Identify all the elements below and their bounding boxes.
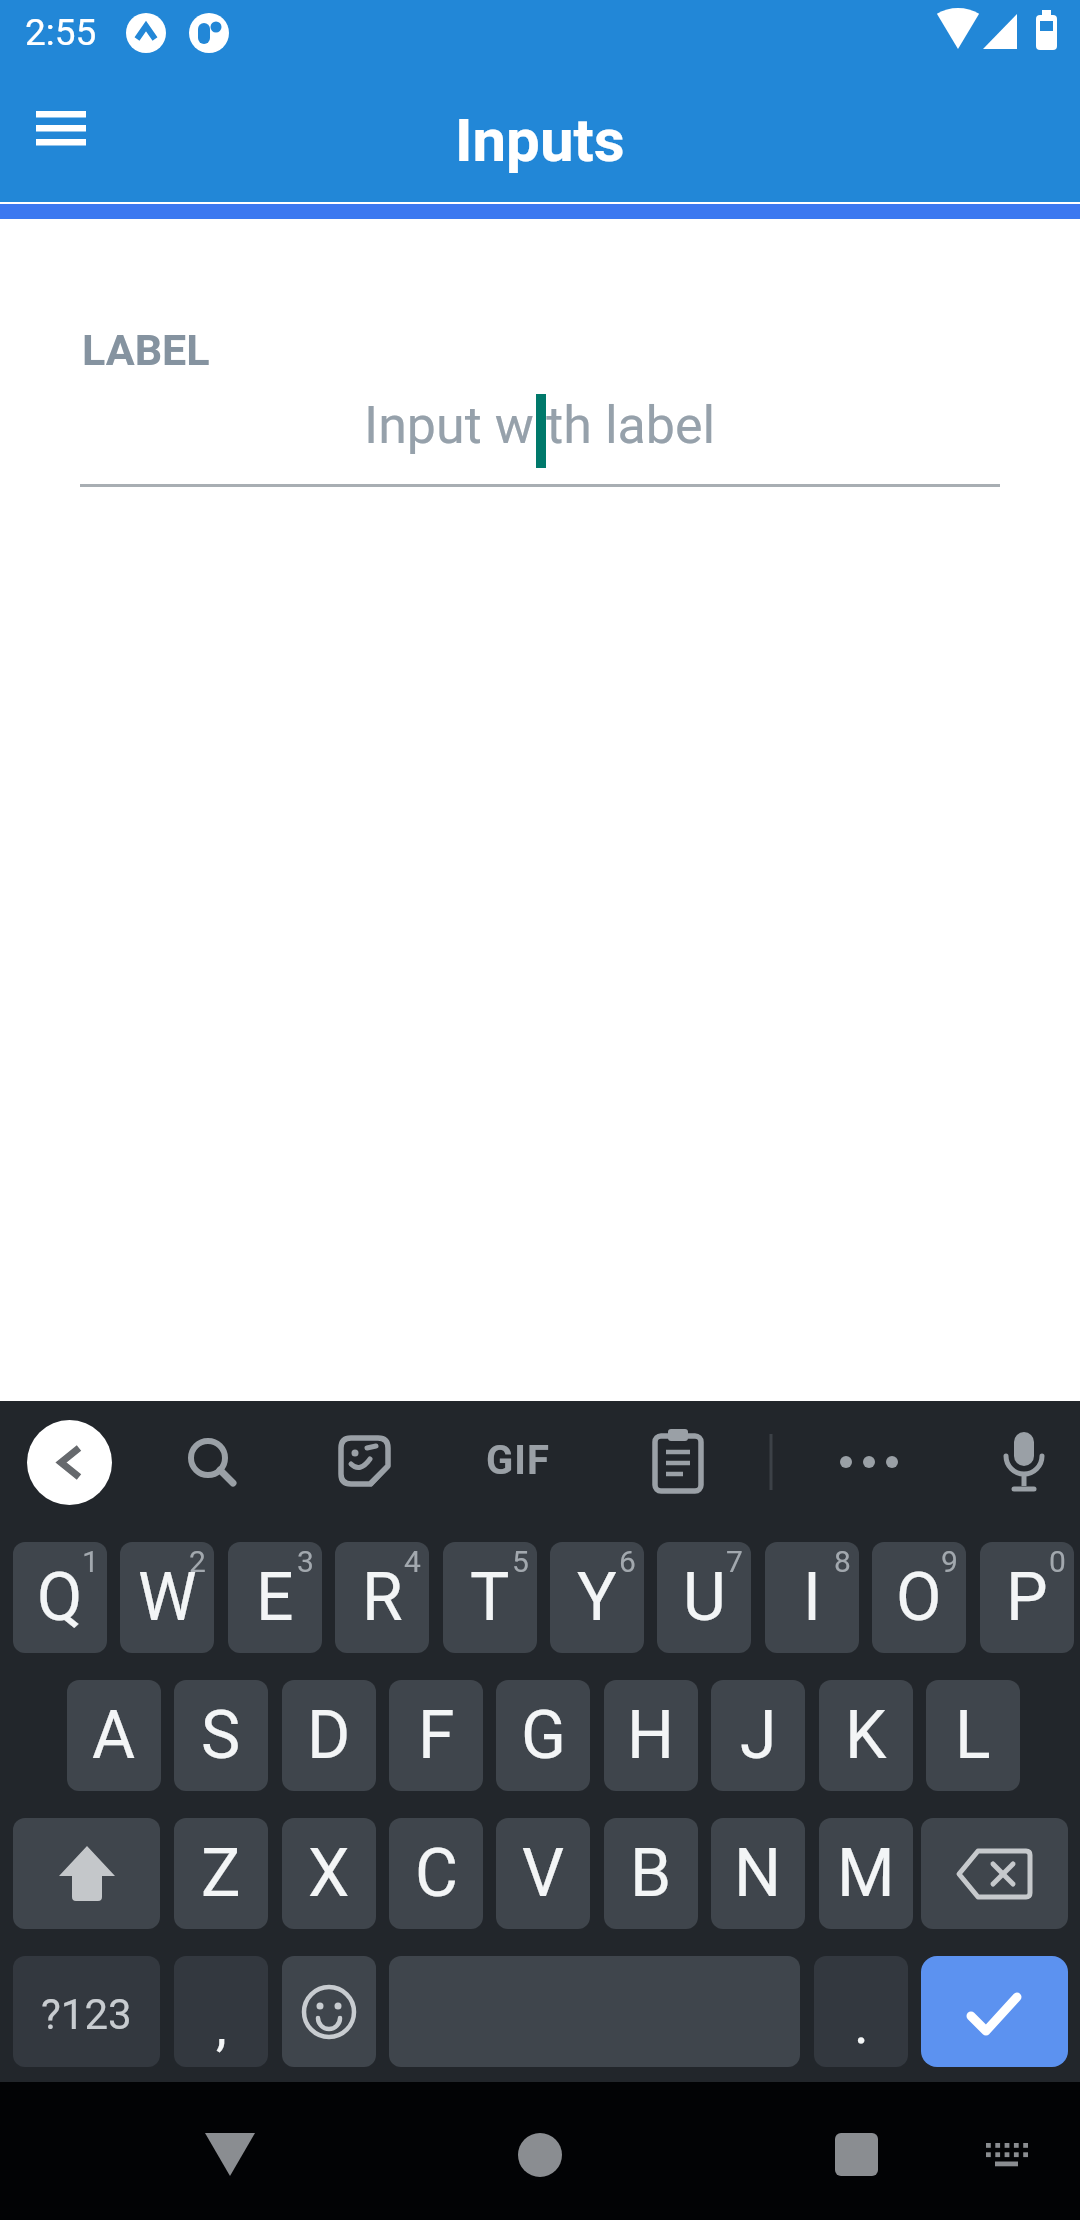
staticText: LABEL	[82, 325, 210, 375]
button[interactable]	[921, 1818, 1068, 1929]
button[interactable]: I	[765, 1542, 859, 1653]
button[interactable]	[921, 1956, 1068, 2067]
staticText: K	[845, 1697, 887, 1774]
staticText: P	[1006, 1559, 1048, 1636]
staticText: G	[521, 1697, 566, 1774]
staticText: J	[740, 1697, 777, 1774]
button[interactable]	[180, 2110, 280, 2200]
staticText: Q	[37, 1559, 83, 1636]
button[interactable]: D	[282, 1680, 376, 1791]
button[interactable]: H	[604, 1680, 698, 1791]
button[interactable]: G	[496, 1680, 590, 1791]
button[interactable]	[24, 99, 98, 157]
button[interactable]: J	[711, 1680, 805, 1791]
staticText: Y	[577, 1559, 617, 1636]
staticText: U	[683, 1559, 726, 1636]
staticText: V	[522, 1835, 565, 1912]
staticText: 7	[726, 1544, 743, 1579]
staticText: C	[415, 1835, 458, 1912]
staticText: 1	[82, 1544, 99, 1579]
staticText: 2:55	[25, 11, 97, 54]
staticText: N	[734, 1835, 782, 1912]
button[interactable]: M	[819, 1818, 913, 1929]
button[interactable]: Y	[550, 1542, 644, 1653]
button[interactable]: B	[604, 1818, 698, 1929]
button[interactable]	[806, 2110, 906, 2200]
staticText: 0	[1049, 1544, 1066, 1579]
staticText: H	[627, 1697, 675, 1774]
button[interactable]: V	[496, 1818, 590, 1929]
button[interactable]	[27, 1420, 112, 1505]
button[interactable]: X	[282, 1818, 376, 1929]
button[interactable]	[490, 2110, 590, 2200]
staticText: E	[256, 1559, 294, 1636]
button[interactable]: O	[872, 1542, 966, 1653]
staticText: ,	[216, 1995, 227, 2058]
staticText: F	[418, 1697, 455, 1774]
staticText: I	[803, 1559, 821, 1636]
staticText: S	[201, 1697, 241, 1774]
button[interactable]: W	[120, 1542, 214, 1653]
staticText: L	[955, 1697, 991, 1774]
staticText: 3	[297, 1544, 314, 1579]
button[interactable]: C	[389, 1818, 483, 1929]
staticText: Z	[201, 1835, 241, 1912]
staticText: 4	[404, 1544, 421, 1579]
button[interactable]: U	[657, 1542, 751, 1653]
button[interactable]: GIF	[486, 1437, 550, 1484]
button[interactable]: K	[819, 1680, 913, 1791]
button[interactable]: ?123	[13, 1956, 160, 2067]
staticText: 8	[834, 1544, 851, 1579]
staticText: T	[470, 1559, 510, 1636]
staticText: .	[854, 1991, 869, 2057]
button[interactable]: ,	[174, 1956, 268, 2067]
button[interactable]	[160, 1412, 260, 1512]
staticText: ?123	[41, 1990, 132, 2039]
button[interactable]: A	[67, 1680, 161, 1791]
button[interactable]: Q	[13, 1542, 107, 1653]
staticText: 6	[619, 1544, 636, 1579]
button[interactable]: Input with label	[0, 383, 1080, 467]
button[interactable]: Z	[174, 1818, 268, 1929]
staticText: A	[92, 1697, 136, 1774]
staticText: X	[308, 1835, 350, 1912]
staticText: B	[630, 1835, 672, 1912]
staticText: Input with label	[364, 395, 716, 456]
button[interactable]: S	[174, 1680, 268, 1791]
button[interactable]: L	[926, 1680, 1020, 1791]
button[interactable]: E	[228, 1542, 322, 1653]
staticText: M	[837, 1835, 895, 1912]
staticText: 9	[941, 1544, 958, 1579]
button[interactable]: R	[335, 1542, 429, 1653]
staticText: D	[307, 1697, 351, 1774]
button[interactable]: .	[814, 1956, 908, 2067]
button[interactable]: N	[711, 1818, 805, 1929]
staticText: R	[362, 1559, 403, 1636]
staticText: O	[896, 1559, 942, 1636]
staticText: 5	[512, 1544, 529, 1579]
button[interactable]	[282, 1956, 376, 2067]
button[interactable]	[13, 1818, 160, 1929]
button[interactable]: F	[389, 1680, 483, 1791]
staticText: Inputs	[455, 105, 625, 175]
button[interactable]: P	[980, 1542, 1074, 1653]
button[interactable]: T	[443, 1542, 537, 1653]
staticText: 2	[189, 1544, 206, 1579]
staticText: W	[138, 1559, 197, 1636]
